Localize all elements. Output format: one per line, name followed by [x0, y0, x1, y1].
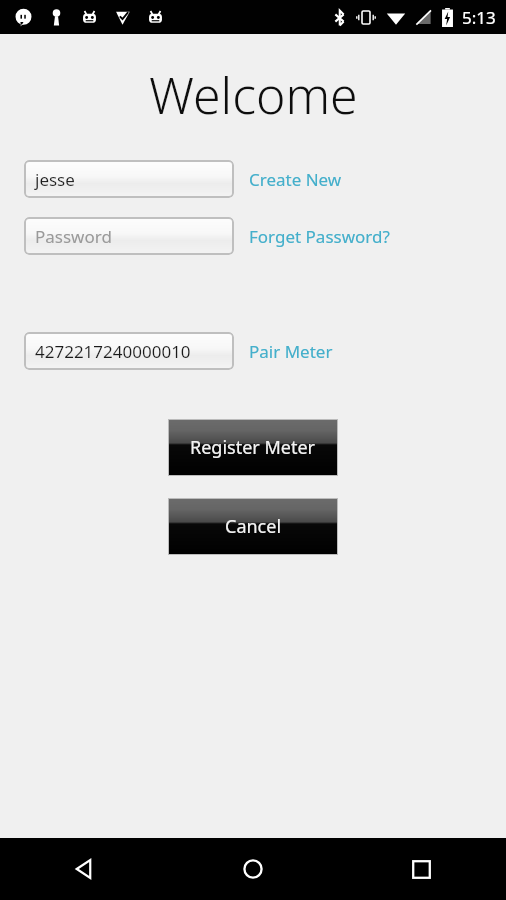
- staticText: Cancel: [225, 514, 282, 539]
- button[interactable]: jesse: [24, 160, 234, 198]
- staticText: jesse: [35, 168, 75, 191]
- staticText: 5:13: [462, 6, 496, 29]
- staticText: Forget Password?: [249, 225, 390, 248]
- staticText: Register Meter: [190, 435, 316, 460]
- button[interactable]: Register Meter: [168, 419, 338, 476]
- button[interactable]: Create New: [247, 164, 344, 195]
- button[interactable]: Home: [168, 838, 337, 900]
- staticText: Pair Meter: [249, 340, 333, 363]
- button[interactable]: Cancel: [168, 498, 338, 555]
- button[interactable]: Forget Password?: [247, 221, 392, 252]
- staticText: 4272217240000010: [35, 340, 191, 363]
- button[interactable]: Recent apps: [337, 838, 506, 900]
- staticText: Password: [35, 225, 112, 248]
- button[interactable]: Back: [0, 838, 168, 900]
- staticText: Create New: [249, 168, 342, 191]
- staticText: Welcome: [149, 61, 358, 129]
- button[interactable]: Password: [24, 217, 234, 255]
- button[interactable]: 4272217240000010: [24, 332, 234, 370]
- button[interactable]: Pair Meter: [247, 336, 335, 367]
